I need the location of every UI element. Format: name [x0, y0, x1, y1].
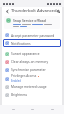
- staticText: Notifications: [11, 41, 31, 45]
- staticText: Brightness: [11, 93, 28, 97]
- button[interactable]: Privileges Access: [2, 74, 62, 83]
- button[interactable]: Manage metered usage: [2, 83, 62, 91]
- button[interactable]: Back: [4, 8, 10, 14]
- staticText: Accept parameter password: [11, 33, 55, 37]
- button[interactable]: Clear always-on memory: [2, 58, 62, 66]
- staticText: Snap Service offload: [13, 18, 46, 23]
- button[interactable]: Notifications: [3, 39, 61, 47]
- button[interactable]: Sunset appearance: [2, 50, 62, 58]
- staticText: Sunset appearance: [11, 52, 40, 56]
- staticText: Synchronize parameter: [11, 68, 46, 72]
- staticText: Enabled: [11, 79, 21, 83]
- staticText: Privileges Access: [11, 74, 37, 78]
- staticText: Clear always-on memory: [11, 60, 49, 64]
- staticText: Manage metered usage: [11, 85, 47, 89]
- button[interactable]: Snap Service offload: [4, 16, 60, 29]
- button[interactable]: Synchronize parameter: [2, 66, 62, 74]
- button[interactable]: Accept parameter password: [2, 31, 62, 38]
- button[interactable]: Recents: [45, 105, 59, 114]
- staticText: Thunderbolt Advanced: [11, 8, 57, 14]
- button[interactable]: Back: [6, 105, 20, 114]
- button[interactable]: Search: [57, 8, 60, 14]
- button[interactable]: Home: [25, 105, 39, 114]
- button[interactable]: Brightness: [2, 91, 62, 99]
